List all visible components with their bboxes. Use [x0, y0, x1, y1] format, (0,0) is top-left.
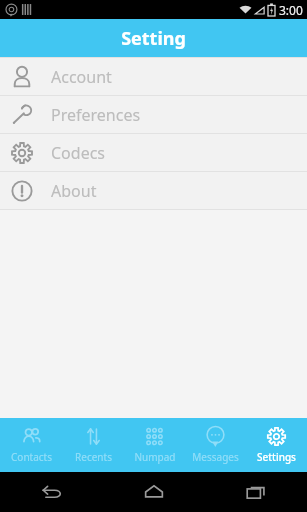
- button[interactable]: Back: [0, 472, 103, 512]
- staticText: About: [51, 180, 97, 202]
- button[interactable]: About: [0, 171, 307, 209]
- staticText: Account: [51, 66, 112, 88]
- staticText: Contacts: [11, 450, 52, 464]
- button[interactable]: Numpad: [124, 418, 185, 472]
- button[interactable]: Account: [0, 57, 307, 95]
- staticText: Messages: [192, 450, 239, 464]
- staticText: Settings: [257, 450, 296, 464]
- staticText: Codecs: [51, 142, 106, 164]
- button[interactable]: Home: [103, 472, 205, 512]
- button[interactable]: Settings: [246, 418, 307, 472]
- staticText: Numpad: [134, 450, 176, 464]
- staticText: Recents: [75, 450, 112, 464]
- button[interactable]: Contacts: [0, 418, 62, 472]
- staticText: 3:00: [279, 2, 303, 18]
- button[interactable]: Codecs: [0, 133, 307, 171]
- button[interactable]: Preferences: [0, 95, 307, 133]
- button[interactable]: Messages: [185, 418, 246, 472]
- button[interactable]: Recent apps: [205, 472, 307, 512]
- staticText: Preferences: [51, 104, 141, 126]
- staticText: Setting: [121, 26, 186, 51]
- button[interactable]: Recents: [62, 418, 124, 472]
